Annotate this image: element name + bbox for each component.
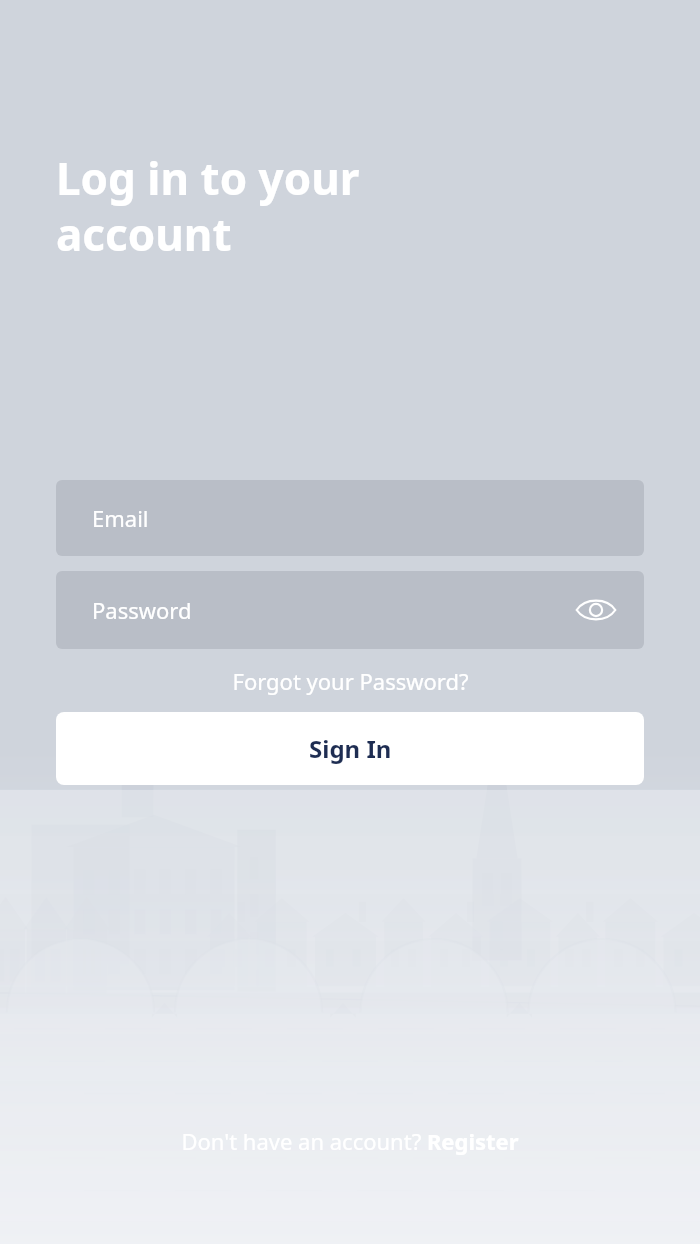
button[interactable]: Show password [574, 588, 618, 632]
button[interactable]: Password [56, 571, 644, 649]
staticText: Forgot your Password? [232, 666, 469, 696]
button[interactable]: Sign In [56, 712, 644, 785]
staticText: Password [92, 595, 192, 625]
staticText: Sign In [309, 732, 392, 765]
staticText: Log in to your account [56, 148, 360, 264]
button[interactable]: Don't have an account? Register [0, 1126, 700, 1156]
staticText: Don't have an account? Register [181, 1126, 519, 1156]
staticText: Email [92, 503, 149, 533]
button[interactable]: Forgot your Password? [0, 666, 700, 696]
button[interactable]: Email [56, 480, 644, 556]
